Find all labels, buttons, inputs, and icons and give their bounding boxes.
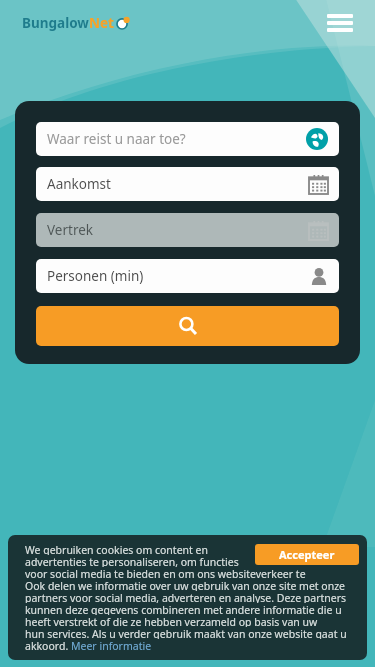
staticText: voor social media te bieden en om ons we… bbox=[25, 567, 355, 579]
staticText: hun services. Als u verder gebruik maakt… bbox=[25, 627, 347, 639]
button[interactable]: Persons bbox=[36, 259, 339, 293]
staticText: kunnen deze gegevens combineren met ande… bbox=[25, 603, 355, 615]
staticText: heeft verstrekt of die ze hebben verzame… bbox=[25, 615, 355, 627]
staticText: We gebruiken cookies om content en bbox=[25, 543, 208, 555]
staticText: Ook delen we informatie over uw gebruik … bbox=[25, 579, 346, 591]
button[interactable]: Search bbox=[36, 306, 339, 346]
staticText: Accepteer bbox=[279, 547, 335, 562]
button[interactable]: Arrival date bbox=[36, 167, 339, 201]
staticText: Aankomst bbox=[47, 175, 111, 193]
button[interactable]: Destination bbox=[36, 122, 339, 156]
staticText: advertenties te personaliseren, om funct… bbox=[25, 555, 239, 567]
staticText: Vertrek bbox=[47, 221, 94, 239]
staticText: Meer informatie bbox=[71, 639, 152, 653]
staticText: akkoord. bbox=[25, 639, 71, 653]
button[interactable]: Accepteer bbox=[255, 544, 359, 565]
staticText: Waar reist u naar toe? bbox=[47, 130, 186, 148]
button[interactable]: Menu bbox=[317, 0, 363, 46]
button[interactable]: Departure date bbox=[36, 213, 339, 247]
staticText: Net bbox=[89, 14, 114, 32]
button[interactable]: Meer informatie bbox=[71, 639, 152, 653]
staticText: Bungalow bbox=[22, 14, 89, 32]
staticText: partners voor social media, adverteren e… bbox=[25, 591, 347, 603]
staticText: Personen (min) bbox=[47, 267, 144, 285]
